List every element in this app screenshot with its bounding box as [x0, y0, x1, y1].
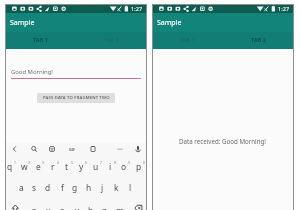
staticText: z: [32, 205, 36, 210]
staticText: p: [136, 161, 142, 172]
button[interactable]: a: [14, 180, 28, 195]
button[interactable]: y: [74, 159, 88, 174]
button[interactable]: b: [84, 203, 98, 210]
button[interactable]: n: [98, 203, 112, 210]
button[interactable]: u: [89, 159, 103, 174]
staticText: TAB 1: [33, 37, 49, 44]
staticText: Sample: [157, 18, 182, 28]
staticText: l: [129, 182, 132, 193]
staticText: c: [60, 205, 65, 210]
button[interactable]: z: [27, 203, 41, 210]
button[interactable]: j: [95, 180, 109, 195]
staticText: g: [72, 182, 78, 193]
staticText: 5: [71, 160, 73, 165]
staticText: 7: [100, 160, 102, 165]
button[interactable]: s: [27, 180, 41, 195]
staticText: Good Morning!: [11, 68, 53, 76]
staticText: h: [86, 182, 92, 193]
button[interactable]: g: [68, 180, 82, 195]
button[interactable]: TAB 1: [152, 32, 223, 49]
button[interactable]: i: [103, 159, 117, 174]
staticText: o: [121, 161, 127, 172]
staticText: v: [75, 205, 80, 210]
staticText: PASS DATA TO FRAGMENT TWO: [43, 95, 110, 101]
button[interactable]: o: [117, 159, 131, 174]
button[interactable]: f: [55, 180, 69, 195]
button[interactable]: TAB 1: [5, 32, 76, 49]
staticText: 3: [42, 160, 44, 165]
button[interactable]: k: [109, 180, 123, 195]
staticText: e: [36, 161, 41, 172]
staticText: t: [65, 161, 69, 172]
staticText: 1: [14, 160, 16, 165]
button[interactable]: x: [41, 203, 55, 210]
staticText: i: [109, 161, 112, 172]
button[interactable]: l: [123, 180, 137, 195]
staticText: j: [101, 182, 104, 193]
staticText: 4: [57, 160, 59, 165]
staticText: d: [45, 182, 51, 193]
staticText: Data received: Good Morning!: [179, 137, 267, 145]
button[interactable]: m: [113, 203, 127, 210]
button[interactable]: v: [70, 203, 84, 210]
staticText: 1:27: [131, 5, 143, 13]
staticText: a: [19, 182, 24, 193]
staticText: 2: [28, 160, 30, 165]
staticText: 0: [143, 160, 145, 165]
staticText: q: [7, 161, 13, 172]
staticText: 1:27: [278, 5, 290, 13]
button[interactable]: e: [31, 159, 45, 174]
button[interactable]: h: [82, 180, 96, 195]
staticText: TAB 2: [104, 37, 119, 44]
staticText: f: [61, 182, 64, 193]
button[interactable]: p: [132, 159, 146, 174]
staticText: w: [21, 161, 28, 172]
staticText: TAB 2: [251, 37, 267, 44]
staticText: s: [32, 182, 37, 193]
staticText: 8: [114, 160, 116, 165]
button[interactable]: TAB 2: [76, 32, 147, 49]
staticText: m: [116, 205, 124, 210]
staticText: n: [102, 205, 108, 210]
staticText: r: [51, 161, 55, 172]
button[interactable]: d: [41, 180, 55, 195]
staticText: GIF: [69, 147, 75, 152]
button[interactable]: TAB 2: [223, 32, 294, 49]
button[interactable]: Shift: [10, 201, 21, 210]
staticText: k: [114, 182, 119, 193]
staticText: Sample: [10, 18, 35, 28]
staticText: 9: [128, 160, 130, 165]
staticText: u: [93, 161, 99, 172]
button[interactable]: PASS DATA TO FRAGMENT TWO: [37, 93, 115, 103]
button[interactable]: Backspace: [133, 201, 145, 210]
button[interactable]: r: [46, 159, 60, 174]
staticText: TAB 1: [180, 37, 195, 44]
button[interactable]: w: [17, 159, 31, 174]
staticText: 6: [85, 160, 87, 165]
staticText: y: [79, 161, 84, 172]
button[interactable]: t: [60, 159, 74, 174]
button[interactable]: q: [3, 159, 17, 174]
staticText: x: [46, 205, 51, 210]
staticText: b: [88, 205, 94, 210]
button[interactable]: c: [55, 203, 69, 210]
